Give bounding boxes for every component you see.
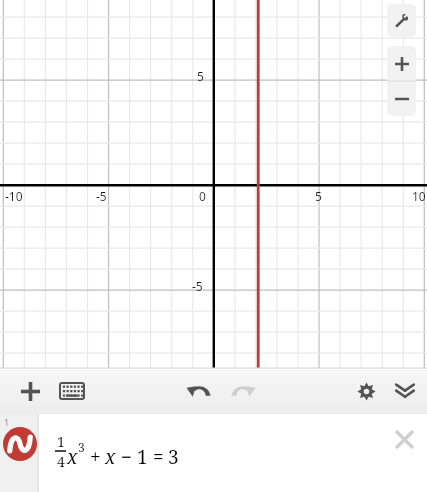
staticText: − [121, 444, 133, 470]
staticText: 1 [57, 432, 65, 451]
button[interactable]: Zoom out [387, 82, 416, 116]
button[interactable]: Settings [348, 368, 384, 414]
staticText: 5 [197, 68, 204, 84]
staticText: 3 [78, 439, 85, 455]
staticText: 5 [315, 188, 322, 204]
staticText: 1 [4, 416, 10, 428]
staticText: 10 [412, 188, 426, 204]
button[interactable]: Expression 1 color [0, 414, 39, 492]
staticText: 4 [57, 452, 65, 471]
button[interactable]: Undo [178, 368, 220, 414]
button[interactable]: Redo [222, 368, 264, 414]
button[interactable]: Keyboard [52, 368, 92, 414]
staticText: = [153, 444, 164, 470]
button[interactable]: 1 [39, 414, 427, 492]
staticText: -10 [5, 188, 23, 204]
staticText: 1 [137, 444, 148, 470]
staticText: + [90, 444, 101, 470]
button[interactable]: Graph settings [387, 4, 416, 37]
staticText: 3 [168, 444, 179, 470]
button[interactable]: Add expression [10, 368, 50, 414]
button[interactable]: Collapse [387, 368, 423, 414]
button[interactable]: Zoom in [387, 46, 416, 81]
button[interactable]: Delete expression [389, 424, 419, 454]
staticText: -5 [96, 188, 107, 204]
staticText: x [105, 444, 116, 470]
staticText: -5 [192, 278, 203, 294]
staticText: 0 [199, 188, 206, 204]
staticText: x [67, 444, 78, 470]
